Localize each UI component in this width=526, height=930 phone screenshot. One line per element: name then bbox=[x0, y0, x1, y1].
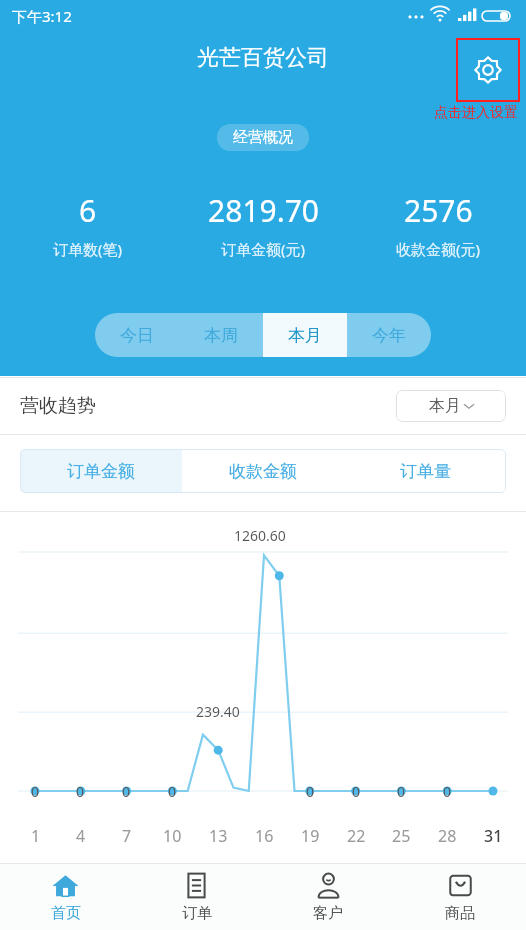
staticText: 营收趋势 bbox=[20, 394, 96, 418]
button[interactable]: 今日 bbox=[95, 313, 179, 357]
staticText: 客户 bbox=[313, 904, 343, 923]
staticText: 0 bbox=[31, 782, 40, 801]
button[interactable]: Settings bbox=[456, 38, 520, 102]
staticText: 下午3:12 bbox=[12, 6, 72, 26]
staticText: 商品 bbox=[445, 904, 475, 923]
button[interactable]: 本周 bbox=[179, 313, 263, 357]
staticText: 订单量 bbox=[400, 461, 451, 482]
staticText: 2576 bbox=[404, 190, 473, 231]
staticText: 19 bbox=[301, 825, 320, 847]
button[interactable]: 经营概况 bbox=[217, 124, 309, 151]
button[interactable]: 商品 bbox=[394, 864, 526, 930]
button[interactable]: 本月 bbox=[396, 390, 506, 422]
staticText: 0 bbox=[76, 782, 85, 801]
button[interactable]: 首页 bbox=[0, 864, 131, 930]
staticText: 1260.60 bbox=[234, 526, 286, 545]
staticText: 经营概况 bbox=[233, 128, 293, 147]
staticText: 点击进入设置 bbox=[434, 104, 518, 122]
staticText: 收款金额(元) bbox=[396, 239, 481, 259]
staticText: 10 bbox=[163, 825, 182, 847]
staticText: 订单金额 bbox=[67, 461, 135, 482]
staticText: 收款金额 bbox=[229, 461, 297, 482]
button[interactable]: 本月 bbox=[263, 313, 347, 357]
staticText: 22 bbox=[347, 825, 366, 847]
staticText: 首页 bbox=[51, 904, 81, 923]
staticText: 25 bbox=[392, 825, 411, 847]
staticText: 13 bbox=[209, 825, 228, 847]
staticText: 28 bbox=[438, 825, 457, 847]
staticText: 0 bbox=[306, 782, 315, 801]
staticText: 4 bbox=[76, 825, 86, 847]
staticText: 本周 bbox=[204, 325, 238, 346]
staticText: 今年 bbox=[372, 325, 406, 346]
staticText: 7 bbox=[122, 825, 132, 847]
staticText: 0 bbox=[352, 782, 361, 801]
staticText: 1 bbox=[31, 825, 41, 847]
staticText: 本月 bbox=[429, 396, 461, 416]
staticText: 31 bbox=[484, 825, 503, 847]
button[interactable]: 订单量 bbox=[344, 449, 506, 493]
staticText: 0 bbox=[168, 782, 177, 801]
staticText: 0 bbox=[122, 782, 131, 801]
staticText: 2819.70 bbox=[208, 190, 319, 231]
staticText: 6 bbox=[79, 190, 97, 231]
staticText: 本月 bbox=[288, 325, 322, 346]
staticText: 0 bbox=[443, 782, 452, 801]
staticText: 0 bbox=[397, 782, 406, 801]
staticText: 订单数(笔) bbox=[53, 239, 123, 259]
button[interactable]: 订单金额 bbox=[20, 449, 182, 493]
staticText: 光芒百货公司 bbox=[197, 44, 329, 72]
staticText: 今日 bbox=[120, 325, 154, 346]
staticText: 16 bbox=[255, 825, 274, 847]
button[interactable]: 收款金额 bbox=[182, 449, 344, 493]
button[interactable]: 订单 bbox=[131, 864, 262, 930]
staticText: 订单金额(元) bbox=[221, 239, 306, 259]
staticText: 订单 bbox=[182, 904, 212, 923]
button[interactable]: 今年 bbox=[347, 313, 431, 357]
staticText: 239.40 bbox=[196, 702, 240, 721]
button[interactable]: 客户 bbox=[262, 864, 394, 930]
